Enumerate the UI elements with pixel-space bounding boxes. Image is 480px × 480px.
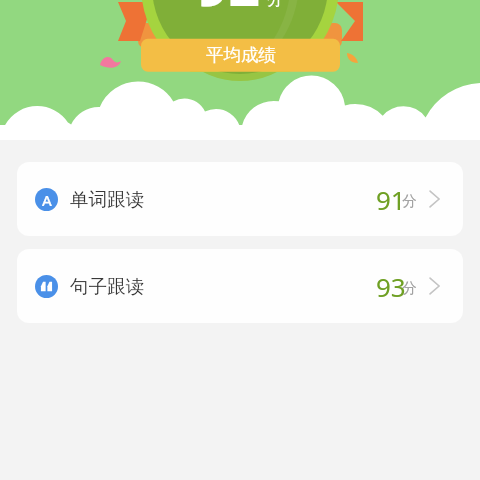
staticText: 单词跟读 (70, 188, 144, 211)
button[interactable]: A (17, 162, 463, 236)
staticText: 分 (402, 279, 417, 297)
staticText: A (42, 190, 52, 210)
button[interactable]: 句子跟读 (17, 249, 463, 323)
staticText: 93 (376, 269, 406, 304)
staticText: 分 (267, 0, 283, 10)
staticText: 92 (197, 0, 260, 22)
staticText: 分 (402, 192, 417, 210)
staticText: 91 (376, 182, 406, 217)
staticText: 平均成绩 (206, 44, 276, 66)
staticText: 句子跟读 (70, 275, 144, 298)
